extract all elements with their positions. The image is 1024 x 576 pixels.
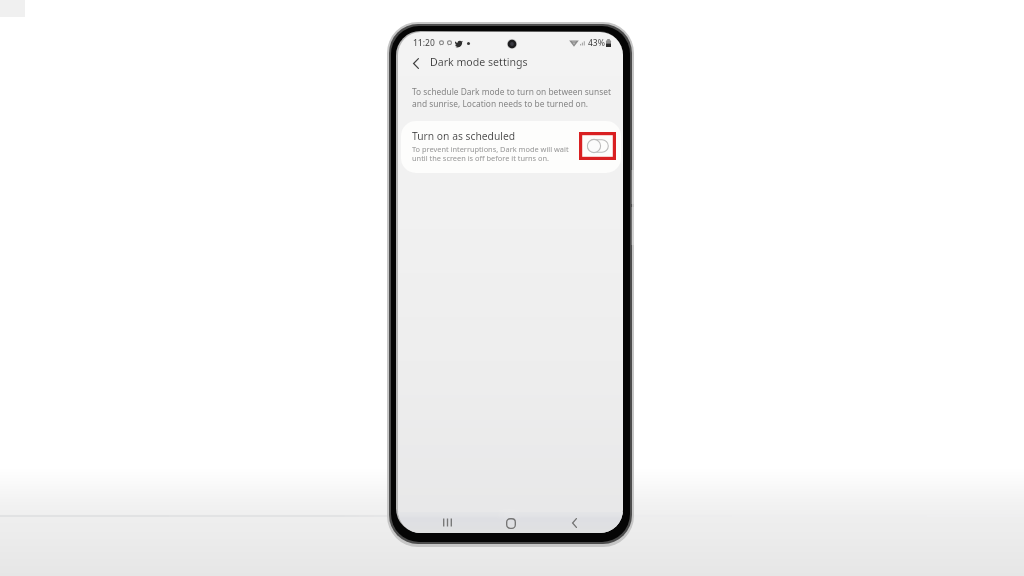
staticText: Turn on as scheduled: [412, 129, 516, 143]
button[interactable]: Turn on as scheduled: [587, 139, 609, 153]
staticText: 11:20: [413, 37, 435, 49]
button[interactable]: Home: [501, 513, 521, 533]
staticText: To prevent interruptions, Dark mode will…: [412, 144, 572, 163]
button[interactable]: Back: [406, 53, 426, 73]
staticText: 43%: [588, 37, 605, 49]
button[interactable]: Recent apps: [437, 512, 457, 532]
staticText: To schedule Dark mode to turn on between…: [412, 86, 611, 110]
staticText: Dark mode settings: [430, 55, 528, 69]
button[interactable]: Back: [564, 513, 584, 533]
button[interactable]: Turn on as scheduled: [401, 121, 621, 173]
